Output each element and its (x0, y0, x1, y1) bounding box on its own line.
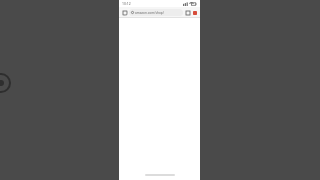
staticText: amazon.com/shop/seohealthsearch (135, 11, 181, 15)
button[interactable]: Tabs (184, 9, 191, 16)
button[interactable]: Menu (121, 9, 128, 16)
staticText: 10:12 (122, 1, 131, 6)
button[interactable]: Account (191, 9, 198, 16)
button[interactable]: amazon.com/shop/seohealthsearch (129, 9, 183, 16)
